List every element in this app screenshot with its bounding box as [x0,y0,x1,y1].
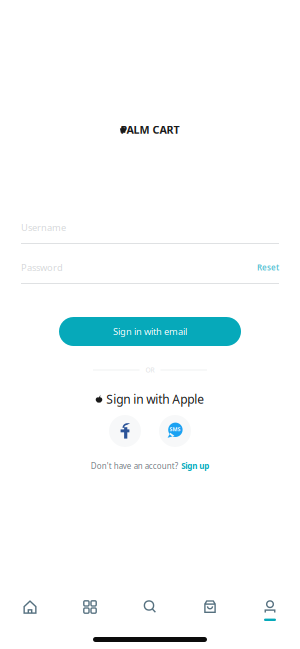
staticText: Don't have an account? [91,461,178,471]
staticText: Username [21,221,66,234]
staticText: PALM CART [120,122,179,137]
button[interactable]: Sign in with email [59,317,241,346]
button[interactable]: Sign in with Facebook [109,415,141,447]
staticText: OR [145,366,154,374]
button[interactable]: Account [240,600,300,622]
button[interactable]: Don't have an account? [91,461,209,471]
staticText: Password [21,261,63,274]
staticText: Sign up [181,461,209,471]
staticText: Reset [257,262,279,273]
button[interactable]: Sign in with Apple [96,392,204,406]
button[interactable]: Sign in with SMS [159,415,191,447]
button[interactable]: Home [0,600,60,622]
button[interactable]: Categories [60,600,120,622]
button[interactable]: Bag [180,600,240,622]
button[interactable]: Reset [257,262,279,273]
button[interactable]: Search [120,600,180,622]
staticText: Sign in with Apple [106,391,204,407]
staticText: SMS [169,426,180,433]
staticText: Sign in with email [113,325,187,338]
